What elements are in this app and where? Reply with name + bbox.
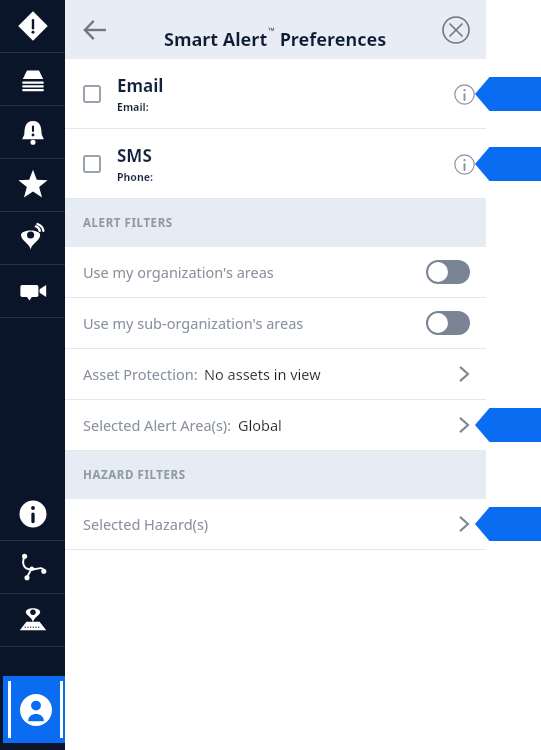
button[interactable]: Email	[65, 59, 486, 128]
staticText: Use my sub-organization's areas	[83, 313, 304, 333]
button[interactable]: Info	[449, 79, 479, 109]
staticText: Smart Alert	[164, 27, 268, 52]
button[interactable]: Info	[449, 149, 479, 179]
button[interactable]: SMS	[65, 129, 486, 198]
staticText: Use my organization's areas	[83, 262, 274, 282]
staticText: Selected Alert Area(s):	[83, 415, 232, 435]
button[interactable]: Back	[73, 8, 117, 52]
staticText: SMS	[117, 144, 152, 167]
staticText: No assets in view	[204, 364, 321, 384]
button[interactable]: Profile	[11, 681, 60, 738]
button[interactable]: Routes	[0, 541, 65, 593]
button[interactable]: Use my sub-organization's areas	[65, 298, 486, 348]
button[interactable]: Favorites	[0, 159, 65, 211]
staticText: HAZARD FILTERS	[83, 467, 186, 483]
button[interactable]: Selected Hazard(s)	[65, 499, 486, 549]
button[interactable]: Notifications	[0, 106, 65, 158]
staticText: Email	[117, 74, 164, 97]
button[interactable]: Locations	[0, 212, 65, 264]
button[interactable]: Layers	[0, 53, 65, 105]
staticText: Phone:	[117, 170, 153, 184]
staticText: Global	[238, 415, 282, 435]
staticText: Selected Hazard(s)	[83, 514, 209, 534]
staticText: Preferences	[275, 27, 387, 52]
button[interactable]: Camera	[0, 265, 65, 317]
button[interactable]: Information	[0, 488, 65, 540]
button[interactable]: Asset Protection:	[65, 349, 486, 399]
staticText: Email:	[117, 100, 149, 114]
button[interactable]: Map Pin	[0, 594, 65, 646]
staticText: ™	[268, 24, 275, 36]
button[interactable]: Selected Alert Area(s):	[65, 400, 486, 450]
staticText: ALERT FILTERS	[83, 215, 173, 231]
button[interactable]: Use my organization's areas	[65, 247, 486, 297]
button[interactable]: Close	[434, 8, 478, 52]
button[interactable]: Alerts	[0, 0, 65, 52]
staticText: Asset Protection:	[83, 364, 198, 384]
